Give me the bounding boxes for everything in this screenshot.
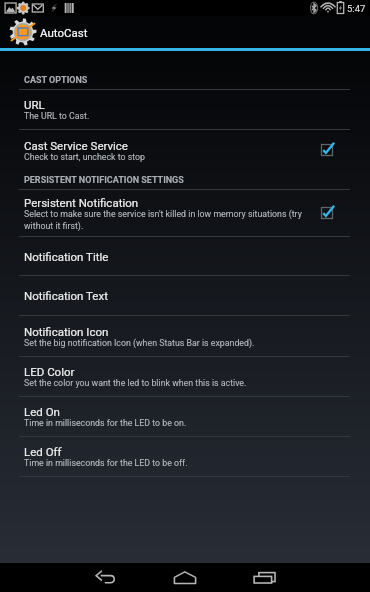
button[interactable]: Led On <box>0 397 370 436</box>
button[interactable]: Recent apps <box>244 563 284 592</box>
staticText: URL <box>24 98 45 111</box>
staticText: CAST OPTIONS <box>24 75 88 86</box>
button[interactable]: Led Off <box>0 437 370 476</box>
staticText: The URL to Cast. <box>24 111 90 121</box>
staticText: Notification Text <box>24 289 108 302</box>
staticText: 5:47 <box>347 3 366 14</box>
button[interactable]: Notification Text <box>0 276 370 315</box>
staticText: Select to make sure the service isn't ki… <box>24 209 309 231</box>
staticText: AutoCast <box>40 26 88 39</box>
staticText: Set the big notification Icon (when Stat… <box>24 338 255 348</box>
button[interactable]: Toggle setting <box>317 140 337 160</box>
staticText: Time in milliseconds for the LED to be o… <box>24 418 187 428</box>
button[interactable]: Persistent Notification <box>0 190 370 236</box>
staticText: PERSISTENT NOTIFICATION SETTINGS <box>24 175 184 186</box>
staticText: Cast Service Service <box>24 139 128 152</box>
button[interactable]: Notification Icon <box>0 316 370 356</box>
button[interactable]: Toggle setting <box>317 203 337 223</box>
button[interactable]: LED Color <box>0 357 370 396</box>
staticText: Time in milliseconds for the LED to be o… <box>24 458 188 468</box>
button[interactable]: Cast Service Service <box>0 130 370 170</box>
button[interactable]: URL <box>0 90 370 129</box>
staticText: LED Color <box>24 365 75 378</box>
staticText: Led On <box>24 405 60 418</box>
staticText: Check to start, uncheck to stop <box>24 152 146 162</box>
button[interactable]: Notification Title <box>0 237 370 275</box>
button[interactable]: Home <box>165 563 205 592</box>
staticText: Set the color you want the led to blink … <box>24 378 247 388</box>
staticText: Notification Icon <box>24 325 109 338</box>
button[interactable]: Back <box>86 563 126 592</box>
staticText: Notification Title <box>24 250 109 263</box>
staticText: Led Off <box>24 445 62 458</box>
staticText: Persistent Notification <box>24 196 139 209</box>
